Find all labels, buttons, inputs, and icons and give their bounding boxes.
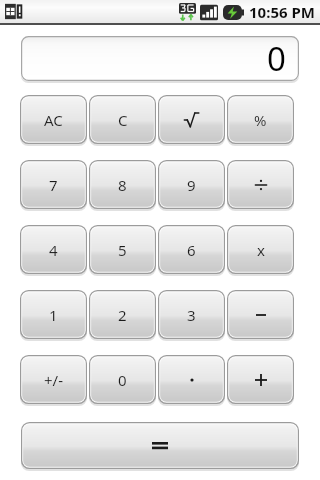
- staticText: 9: [187, 175, 196, 195]
- button[interactable]: Divide: [227, 160, 294, 209]
- staticText: 8: [118, 175, 127, 195]
- staticText: x: [257, 240, 265, 260]
- staticText: +/-: [44, 370, 63, 390]
- button[interactable]: Minus: [227, 290, 294, 339]
- button[interactable]: 1: [20, 290, 87, 339]
- staticText: %: [254, 110, 267, 130]
- staticText: C: [118, 110, 128, 130]
- staticText: AC: [44, 110, 63, 130]
- button[interactable]: 9: [158, 160, 225, 209]
- staticText: 0: [118, 370, 127, 390]
- staticText: 4: [49, 240, 58, 260]
- staticText: 5: [118, 240, 127, 260]
- button[interactable]: 8: [89, 160, 156, 209]
- button[interactable]: 0: [89, 355, 156, 404]
- staticText: 0: [267, 36, 286, 81]
- button[interactable]: 2: [89, 290, 156, 339]
- button[interactable]: C: [89, 95, 156, 144]
- staticText: 1: [49, 305, 58, 325]
- button[interactable]: Square root: [158, 95, 225, 144]
- button[interactable]: AC: [20, 95, 87, 144]
- button[interactable]: 6: [158, 225, 225, 274]
- staticText: 2: [118, 305, 127, 325]
- button[interactable]: Plus minus: [20, 355, 87, 404]
- button[interactable]: Plus: [227, 355, 294, 404]
- button[interactable]: 3: [158, 290, 225, 339]
- button[interactable]: 5: [89, 225, 156, 274]
- staticText: 10:56 PM: [249, 2, 315, 22]
- button[interactable]: Equals: [21, 422, 299, 469]
- button[interactable]: Decimal point: [158, 355, 225, 404]
- button[interactable]: Multiply: [227, 225, 294, 274]
- button[interactable]: 4: [20, 225, 87, 274]
- button[interactable]: 7: [20, 160, 87, 209]
- button[interactable]: Percent: [227, 95, 294, 144]
- staticText: 6: [187, 240, 196, 260]
- staticText: 7: [49, 175, 58, 195]
- staticText: 3: [187, 305, 196, 325]
